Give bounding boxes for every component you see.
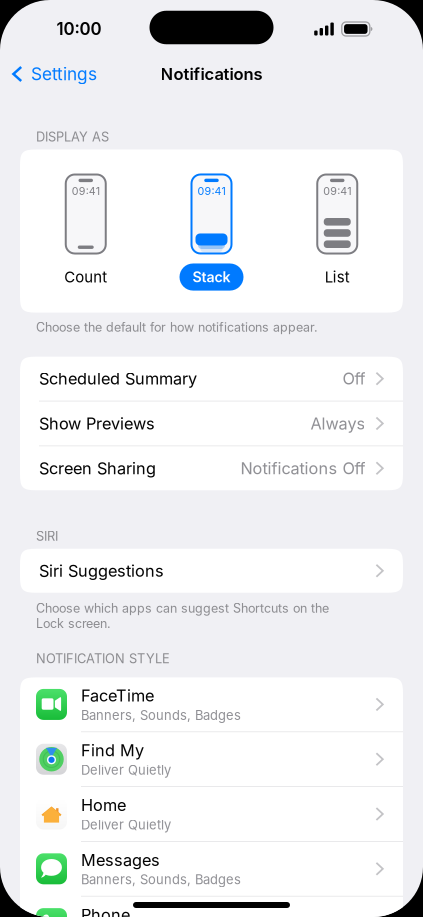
button[interactable]: Screen Sharing: [20, 446, 403, 490]
staticText: Screen Sharing: [39, 458, 156, 478]
button[interactable]: Find My: [20, 732, 403, 786]
button[interactable]: Show Previews: [20, 401, 403, 445]
staticText: Scheduled Summary: [39, 369, 197, 388]
staticText: Banners, Sounds, Badges: [81, 872, 241, 887]
button[interactable]: FaceTime: [20, 677, 403, 731]
staticText: 09:41: [197, 185, 225, 197]
staticText: Stack: [192, 268, 230, 286]
staticText: Notifications: [160, 64, 262, 84]
staticText: Banners, Sounds, Badges: [81, 707, 241, 723]
staticText: Deliver Quietly: [81, 817, 171, 833]
staticText: SIRI: [36, 528, 58, 544]
staticText: 09:41: [323, 185, 351, 197]
staticText: 09:41: [72, 185, 100, 197]
staticText: FaceTime: [81, 686, 154, 705]
staticText: Show Previews: [39, 414, 155, 433]
staticText: Home: [81, 795, 126, 815]
button[interactable]: Scheduled Summary: [20, 357, 403, 401]
staticText: List: [325, 268, 350, 286]
staticText: DISPLAY AS: [36, 129, 109, 144]
staticText: Notifications Off: [240, 458, 365, 478]
button[interactable]: 09:41: [151, 173, 271, 291]
button[interactable]: Settings: [0, 57, 97, 91]
button[interactable]: Phone: [20, 897, 403, 917]
staticText: Find My: [81, 740, 144, 760]
button[interactable]: Siri Suggestions: [20, 549, 403, 593]
staticText: Off: [342, 369, 365, 388]
button[interactable]: Messages: [20, 842, 403, 896]
button[interactable]: Home: [20, 787, 403, 841]
staticText: Phone: [81, 905, 130, 917]
button[interactable]: 09:41: [277, 173, 397, 291]
staticText: Messages: [81, 850, 160, 870]
staticText: 10:00: [56, 19, 101, 39]
button[interactable]: 09:41: [26, 173, 146, 291]
staticText: Choose the default for how notifications…: [36, 320, 318, 335]
staticText: Settings: [31, 64, 97, 84]
staticText: Deliver Quietly: [81, 762, 171, 778]
staticText: Count: [64, 268, 107, 286]
staticText: Always: [310, 414, 365, 433]
staticText: Choose which apps can suggest Shortcuts …: [36, 601, 329, 631]
staticText: NOTIFICATION STYLE: [36, 651, 170, 666]
staticText: Siri Suggestions: [39, 561, 164, 581]
